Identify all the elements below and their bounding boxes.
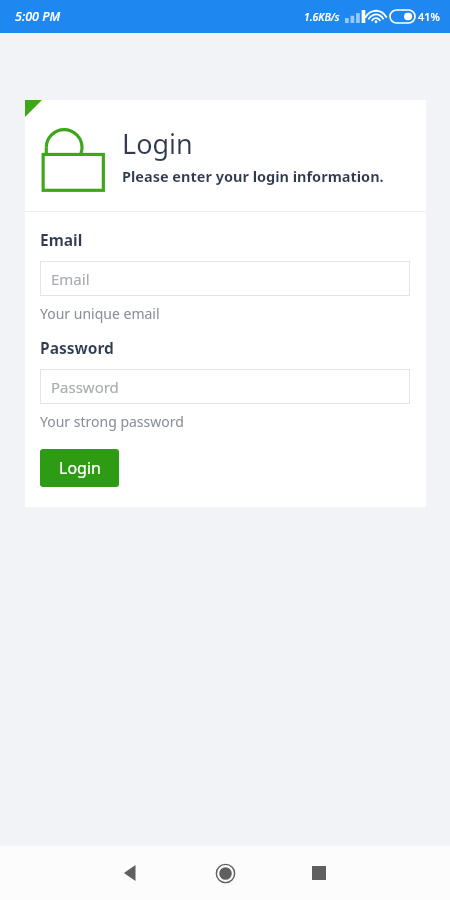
button[interactable]: Login [40, 449, 119, 487]
button[interactable]: Email [40, 261, 410, 296]
staticText: Your strong password [40, 412, 184, 431]
staticText: Password [51, 377, 119, 397]
staticText: Login [122, 125, 193, 162]
button[interactable]: Home [198, 846, 252, 900]
staticText: 1.6KB/s [304, 10, 340, 24]
staticText: Your unique email [40, 304, 160, 323]
button[interactable]: Password [40, 369, 410, 404]
staticText: 41% [418, 9, 440, 24]
staticText: Login [59, 457, 101, 479]
button[interactable]: Back [104, 846, 158, 900]
staticText: Please enter your login information. [122, 166, 384, 186]
staticText: Password [40, 337, 114, 358]
staticText: Email [40, 229, 83, 250]
staticText: Email [51, 269, 90, 289]
button[interactable]: Recent apps [292, 846, 346, 900]
staticText: 5:00 PM [15, 8, 61, 25]
